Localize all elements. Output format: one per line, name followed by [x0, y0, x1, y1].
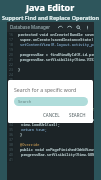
staticText: super.onCreate(savedInstanceState); — [20, 37, 94, 42]
staticText: 34 — [9, 122, 13, 127]
button[interactable]: Search — [75, 24, 82, 31]
staticText: } — [18, 67, 21, 72]
button[interactable]: CANCEL — [41, 111, 62, 119]
staticText: 20 — [9, 52, 13, 57]
button[interactable]: Search — [14, 97, 88, 106]
staticText: 36 — [9, 132, 13, 137]
staticText: 21 — [9, 57, 13, 62]
staticText: Support Find and Replace Operation — [2, 14, 99, 21]
button[interactable]: Undo — [57, 24, 64, 31]
staticText: Database Manager — [10, 24, 51, 30]
staticText: 41 — [9, 157, 13, 162]
staticText: Search — [18, 99, 32, 105]
staticText: progressBar.setVisibility(View.VISIBLE); — [20, 57, 94, 62]
staticText: public void onPageFinished(WebView view,… — [20, 147, 94, 152]
staticText: @Override — [20, 142, 40, 147]
staticText: 37 — [9, 137, 13, 142]
staticText: progressBar.setVisibility(View.GONE); — [21, 152, 94, 157]
staticText: 19 — [9, 47, 13, 52]
staticText: 17 — [9, 37, 13, 42]
staticText: view.loadUrl(url); — [21, 122, 60, 127]
staticText: SEARCH — [69, 112, 86, 118]
staticText: 25 — [9, 77, 13, 82]
staticText: setContentView(R.layout.activity_primary… — [20, 42, 94, 47]
staticText: 22 — [9, 62, 13, 67]
staticText: 38 — [9, 142, 13, 147]
staticText: 40 — [9, 152, 13, 157]
staticText: 35 — [9, 127, 13, 132]
staticText: 24 — [9, 72, 13, 77]
staticText: } — [20, 132, 23, 137]
staticText: 23 — [9, 67, 13, 72]
staticText: return true; — [21, 127, 47, 132]
staticText: protected void onCreate(Bundle savedInst… — [18, 32, 94, 37]
button[interactable]: SEARCH — [67, 111, 88, 119]
staticText: progressBar = findViewById(R.id.progress… — [20, 52, 94, 57]
button[interactable]: More options — [84, 24, 91, 31]
staticText: public boolean shouldOverrideUrlLoading(… — [20, 117, 94, 122]
staticText: 18 — [9, 42, 13, 47]
staticText: Java Editor — [26, 1, 75, 13]
staticText: 16 — [9, 32, 13, 37]
staticText: Search for a specific word — [14, 86, 77, 93]
staticText: 39 — [9, 147, 13, 152]
staticText: CANCEL — [43, 112, 60, 118]
button[interactable]: Redo — [66, 24, 73, 31]
staticText: } — [17, 97, 20, 102]
staticText: private class MyBrowser extends WebViewC… — [18, 107, 94, 112]
